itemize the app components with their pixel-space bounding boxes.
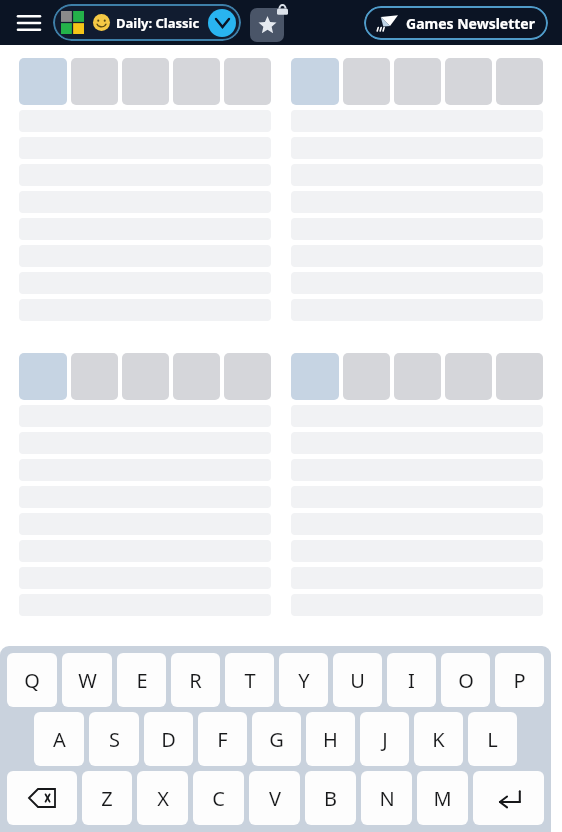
staticText: Y xyxy=(298,667,310,694)
button[interactable]: S xyxy=(89,712,139,766)
button[interactable]: D xyxy=(144,712,193,766)
button[interactable] xyxy=(122,58,169,105)
button[interactable]: K xyxy=(414,712,463,766)
button[interactable] xyxy=(224,58,271,105)
button[interactable] xyxy=(394,353,441,400)
staticText: T xyxy=(244,667,256,694)
button[interactable]: Games Newsletter xyxy=(364,6,548,40)
button[interactable]: Enter xyxy=(473,771,544,825)
staticText: L xyxy=(487,726,498,753)
button[interactable]: Menu xyxy=(14,8,44,38)
staticText: W xyxy=(78,667,97,694)
button[interactable]: J xyxy=(360,712,409,766)
button[interactable]: T xyxy=(225,653,274,707)
button[interactable]: Favorites locked xyxy=(250,4,288,42)
button[interactable]: W xyxy=(62,653,112,707)
staticText: V xyxy=(269,785,281,812)
button[interactable] xyxy=(291,58,339,105)
button[interactable]: Daily: Classic xyxy=(53,4,241,41)
button[interactable]: G xyxy=(252,712,301,766)
button[interactable]: X xyxy=(137,771,188,825)
staticText: Z xyxy=(101,785,113,812)
button[interactable] xyxy=(291,353,339,400)
staticText: F xyxy=(217,726,228,753)
staticText: H xyxy=(323,726,338,753)
button[interactable] xyxy=(71,58,118,105)
button[interactable]: Q xyxy=(7,653,57,707)
button[interactable] xyxy=(19,58,67,105)
button[interactable] xyxy=(394,58,441,105)
button[interactable] xyxy=(71,353,118,400)
button[interactable] xyxy=(343,353,390,400)
staticText: A xyxy=(53,726,66,753)
staticText: Games Newsletter xyxy=(406,14,535,33)
button[interactable]: M xyxy=(417,771,468,825)
button[interactable]: C xyxy=(193,771,244,825)
button[interactable]: A xyxy=(34,712,84,766)
staticText: E xyxy=(136,667,148,694)
button[interactable] xyxy=(173,353,220,400)
button[interactable] xyxy=(496,58,543,105)
button[interactable] xyxy=(122,353,169,400)
button[interactable]: U xyxy=(333,653,382,707)
staticText: Q xyxy=(24,667,40,694)
button[interactable] xyxy=(173,58,220,105)
button[interactable] xyxy=(224,353,271,400)
staticText: I xyxy=(408,667,415,694)
button[interactable]: F xyxy=(198,712,247,766)
button[interactable]: Backspace xyxy=(7,771,77,825)
button[interactable] xyxy=(445,353,492,400)
button[interactable]: N xyxy=(361,771,412,825)
staticText: X xyxy=(157,785,169,812)
staticText: N xyxy=(379,785,395,812)
staticText: Daily: Classic xyxy=(116,14,200,32)
button[interactable] xyxy=(496,353,543,400)
staticText: O xyxy=(458,667,474,694)
staticText: P xyxy=(513,667,526,694)
staticText: C xyxy=(212,785,225,812)
button[interactable] xyxy=(343,58,390,105)
button[interactable]: V xyxy=(249,771,300,825)
staticText: R xyxy=(189,667,202,694)
staticText: K xyxy=(432,726,445,753)
button[interactable]: Y xyxy=(279,653,328,707)
button[interactable] xyxy=(445,58,492,105)
staticText: M xyxy=(433,785,452,812)
staticText: J xyxy=(382,726,388,753)
staticText: D xyxy=(161,726,176,753)
button[interactable]: H xyxy=(306,712,355,766)
button[interactable]: P xyxy=(495,653,544,707)
button[interactable]: Z xyxy=(82,771,132,825)
button[interactable]: E xyxy=(117,653,166,707)
button[interactable]: I xyxy=(387,653,436,707)
button[interactable]: R xyxy=(171,653,220,707)
button[interactable]: O xyxy=(441,653,490,707)
button[interactable]: B xyxy=(305,771,356,825)
staticText: G xyxy=(269,726,284,753)
staticText: U xyxy=(350,667,365,694)
button[interactable]: L xyxy=(468,712,517,766)
staticText: S xyxy=(109,726,120,753)
button[interactable] xyxy=(19,353,67,400)
staticText: B xyxy=(324,785,337,812)
